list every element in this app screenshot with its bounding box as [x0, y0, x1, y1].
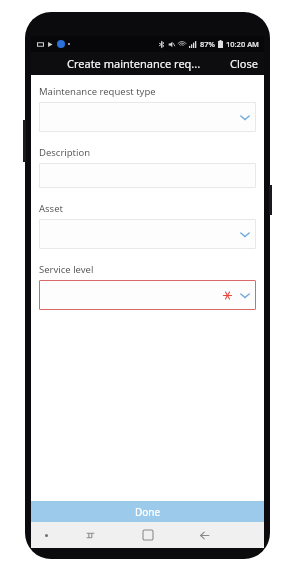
- staticText: Done: [135, 505, 161, 519]
- button[interactable]: Recents: [62, 522, 119, 548]
- button[interactable]: Done: [31, 501, 264, 522]
- staticText: Close: [230, 56, 258, 71]
- staticText: Description: [39, 146, 91, 159]
- button[interactable]: Open dropdown: [39, 102, 256, 132]
- staticText: Service level: [39, 263, 94, 276]
- staticText: Create maintenance req...: [67, 56, 201, 71]
- button[interactable]: Close: [224, 52, 264, 75]
- button[interactable]: Back: [176, 522, 233, 548]
- button[interactable]: Open dropdown: [39, 280, 256, 310]
- staticText: 87%: [200, 39, 215, 49]
- staticText: Maintenance request type: [39, 85, 156, 98]
- button[interactable]: Home: [119, 522, 176, 548]
- button[interactable]: Open dropdown: [39, 219, 256, 249]
- staticText: 10:20 AM: [226, 39, 259, 49]
- button[interactable]: [39, 163, 256, 188]
- staticText: Asset: [39, 202, 63, 215]
